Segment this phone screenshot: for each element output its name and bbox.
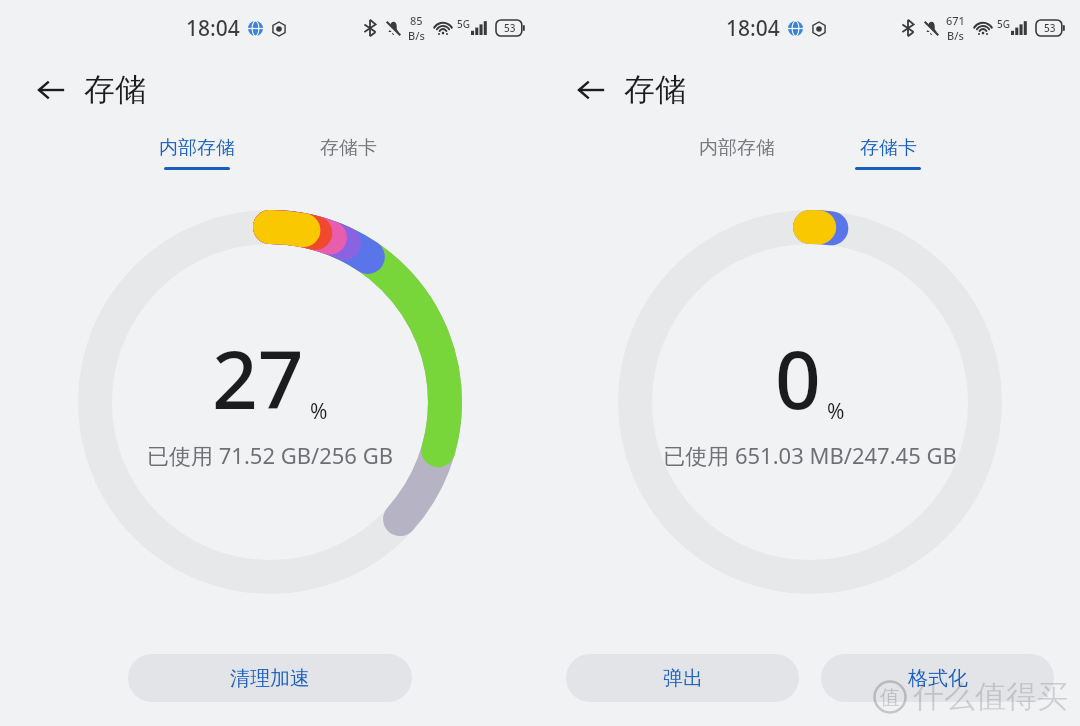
button[interactable]: 存储卡: [847, 134, 929, 172]
staticText: 27: [212, 323, 304, 432]
button[interactable]: 清理加速: [128, 654, 412, 702]
button[interactable]: 格式化: [821, 654, 1054, 702]
staticText: 格式化: [908, 666, 968, 691]
staticText: 存储卡: [320, 136, 377, 160]
staticText: B/s: [947, 28, 964, 43]
staticText: 5G: [457, 17, 470, 31]
staticText: 5G: [997, 17, 1010, 31]
staticText: 85: [410, 13, 423, 28]
staticText: %: [827, 397, 845, 426]
staticText: 已使用 651.03 MB/247.45 GB: [663, 440, 957, 470]
staticText: 弹出: [663, 666, 703, 691]
button[interactable]: 内部存储: [151, 134, 243, 172]
staticText: 什么值得买: [913, 677, 1068, 716]
staticText: %: [310, 397, 328, 426]
staticText: 清理加速: [230, 666, 310, 691]
button[interactable]: 弹出: [566, 654, 799, 702]
staticText: 值: [880, 685, 900, 710]
staticText: 18:04: [186, 14, 240, 43]
staticText: 671: [946, 13, 965, 28]
staticText: 0: [775, 323, 821, 432]
staticText: 53: [1044, 21, 1056, 35]
staticText: 存储卡: [860, 136, 917, 160]
staticText: 53: [504, 21, 516, 35]
staticText: 已使用 71.52 GB/256 GB: [147, 440, 393, 470]
staticText: 存储: [624, 70, 686, 109]
other: Back: [34, 73, 68, 107]
staticText: B/s: [408, 28, 425, 43]
button[interactable]: 内部存储: [691, 134, 783, 172]
other: Back: [574, 73, 608, 107]
staticText: 18:04: [726, 14, 780, 43]
button[interactable]: Back: [30, 66, 150, 113]
staticText: 内部存储: [699, 136, 775, 160]
button[interactable]: 存储卡: [307, 134, 389, 172]
staticText: 存储: [84, 70, 146, 109]
button[interactable]: Back: [570, 66, 690, 113]
staticText: 内部存储: [159, 136, 235, 160]
